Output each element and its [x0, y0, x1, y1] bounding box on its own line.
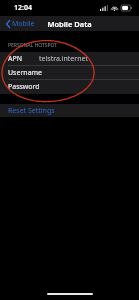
button[interactable]: Mobile — [4, 17, 37, 31]
button[interactable]: APN — [0, 52, 139, 66]
staticText: Password — [8, 82, 40, 92]
staticText: 12:04 — [14, 3, 32, 13]
staticText: Mobile — [12, 19, 35, 29]
button[interactable]: Reset Settings — [0, 104, 139, 117]
staticText: Username — [8, 68, 43, 78]
staticText: APN — [8, 54, 23, 64]
button[interactable]: Password — [0, 80, 139, 94]
button[interactable]: Username — [0, 66, 139, 80]
staticText: Reset Settings — [8, 106, 55, 116]
staticText: telstra.internet — [39, 54, 89, 64]
staticText: PERSONAL HOTSPOT — [8, 42, 58, 49]
staticText: Mobile Data — [47, 19, 92, 29]
